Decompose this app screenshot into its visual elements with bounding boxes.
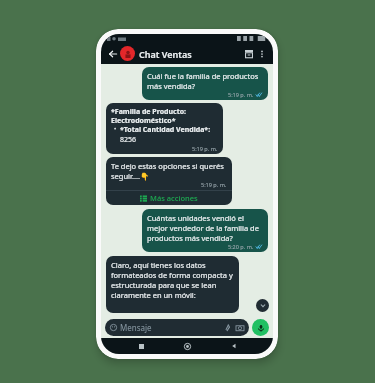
staticText: Chat Ventas — [139, 48, 192, 60]
staticText: • — [111, 125, 120, 133]
button[interactable]: Más acciones — [106, 191, 232, 205]
button[interactable]: *Familia de Producto: Electrodoméstico* — [106, 103, 223, 154]
staticText: *Familia de Producto: Electrodoméstico* — [111, 107, 218, 125]
staticText: Mensaje — [120, 322, 152, 333]
button[interactable]: Scroll to bottom — [256, 299, 269, 312]
staticText: Te dejo estas opciones si querés seguir.… — [111, 161, 227, 181]
button[interactable]: Cuántas unidades vendió el mejor vendedo… — [142, 209, 268, 252]
button[interactable]: Back — [106, 47, 119, 60]
button[interactable]: Mensaje — [105, 319, 249, 336]
staticText: Más acciones — [150, 193, 198, 203]
staticText: 5:19 p. m. — [192, 145, 218, 152]
staticText: 5:19 p. m. — [228, 91, 254, 98]
staticText: 5:20 p. m. — [228, 243, 254, 250]
button[interactable]: Archive — [242, 47, 256, 61]
staticText: Claro, aquí tienes los datos formateados… — [111, 260, 234, 300]
staticText: Cuántas unidades vendió el mejor vendedo… — [147, 213, 263, 243]
staticText: Cuál fue la familia de productos más ven… — [147, 71, 263, 91]
button[interactable]: Cuál fue la familia de productos más ven… — [142, 67, 268, 100]
button[interactable]: Recents — [134, 339, 148, 353]
button[interactable]: Back — [227, 339, 241, 353]
staticText: 5:19 p. m. — [201, 181, 227, 188]
button[interactable]: More options — [256, 48, 268, 60]
button[interactable]: Voice message — [252, 319, 269, 336]
button[interactable]: Home — [180, 339, 194, 353]
staticText: 8256 — [120, 135, 137, 145]
staticText: *Total Cantidad Vendida*: — [120, 125, 211, 135]
